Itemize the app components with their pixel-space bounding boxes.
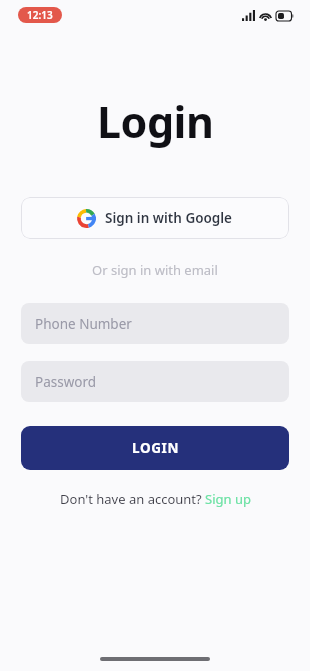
button[interactable]: Phone Number [21, 303, 289, 344]
button[interactable]: Password [21, 361, 289, 402]
staticText: Don't have an account? Sign up [60, 490, 251, 508]
staticText: LOGIN [132, 439, 179, 457]
button[interactable]: Google [21, 197, 289, 239]
button[interactable]: LOGIN [21, 426, 289, 470]
other: Google [77, 209, 96, 228]
staticText: 12:13 [27, 8, 53, 22]
staticText: Sign in with Google [105, 209, 233, 227]
button[interactable]: Don't have an account? Sign up [0, 490, 310, 508]
staticText: Phone Number [35, 315, 132, 333]
staticText: Or sign in with email [92, 261, 218, 279]
staticText: Login [97, 92, 214, 151]
staticText: Password [35, 373, 97, 391]
